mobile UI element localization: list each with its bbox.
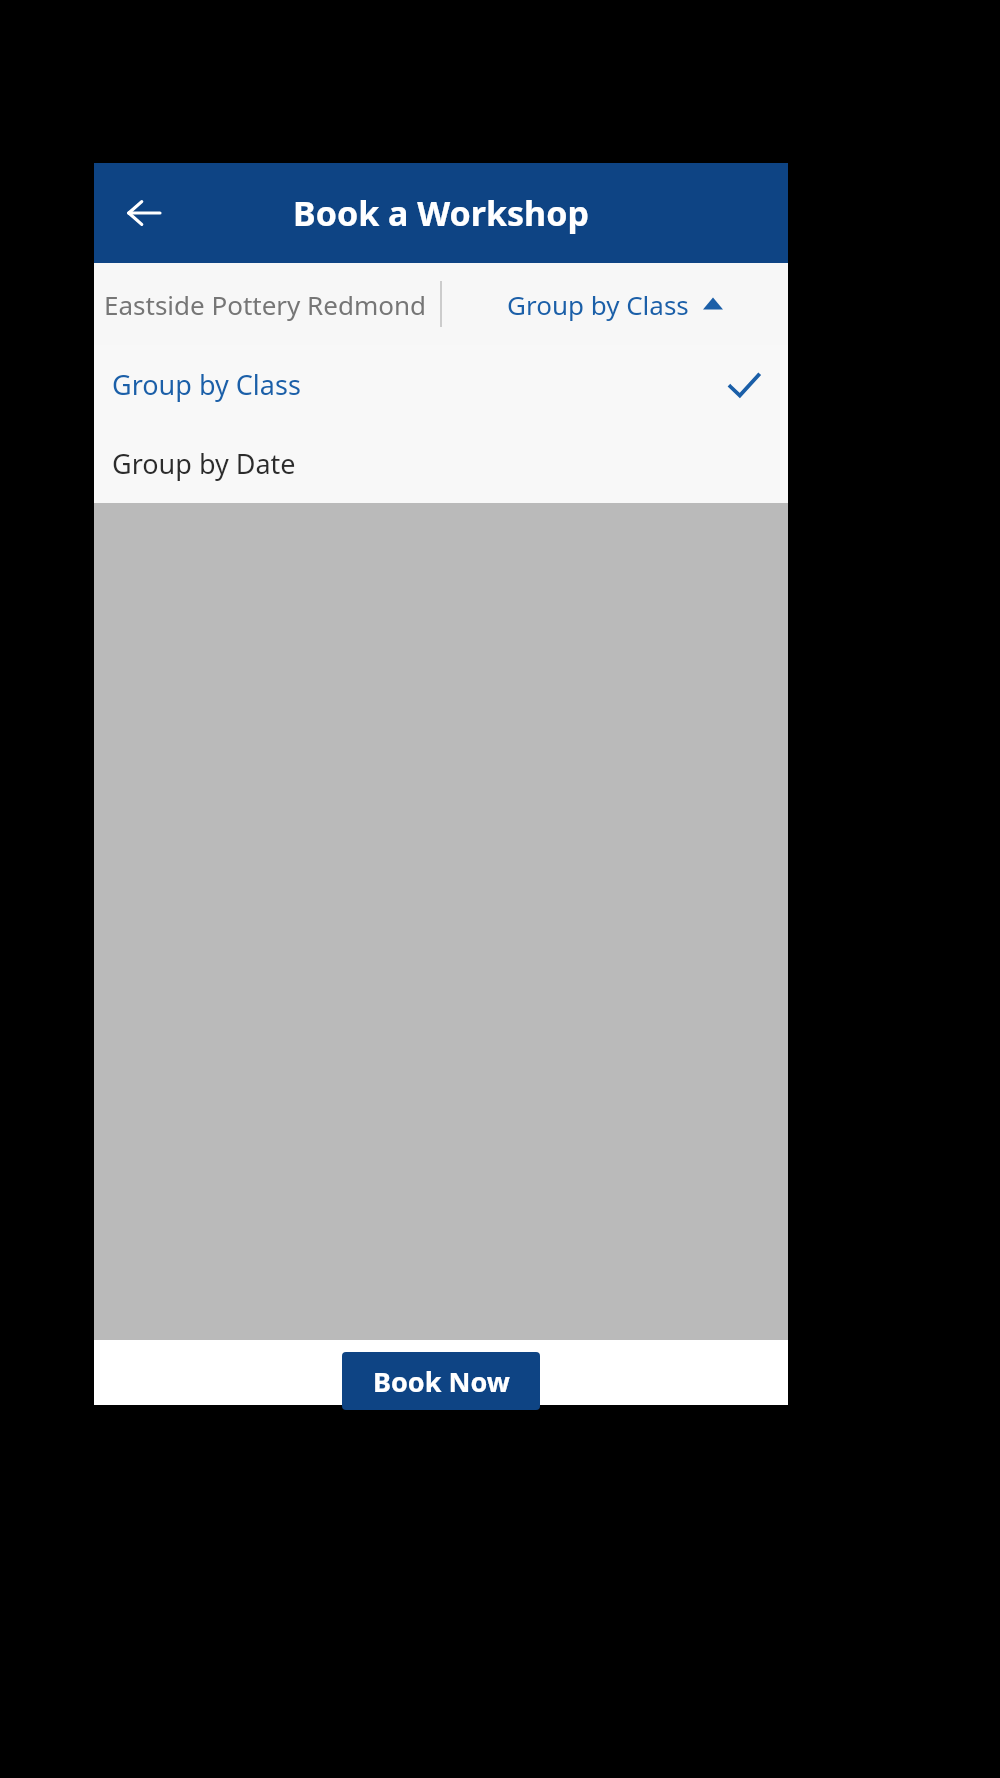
button[interactable]: Back bbox=[110, 179, 178, 247]
staticText: Group by Date bbox=[112, 445, 296, 482]
button[interactable]: Group by Class bbox=[94, 345, 788, 424]
button[interactable]: Book Now bbox=[342, 1352, 540, 1410]
button[interactable]: Eastside Pottery Redmond bbox=[94, 263, 440, 345]
staticText: Eastside Pottery Redmond bbox=[104, 287, 427, 322]
staticText: Group by Class bbox=[507, 287, 689, 322]
staticText: Group by Class bbox=[112, 366, 301, 403]
button[interactable]: Group by Class bbox=[442, 263, 788, 345]
staticText: Book a Workshop bbox=[190, 190, 692, 236]
button[interactable]: Group by Date bbox=[94, 424, 788, 503]
staticText: Book Now bbox=[373, 1363, 510, 1400]
